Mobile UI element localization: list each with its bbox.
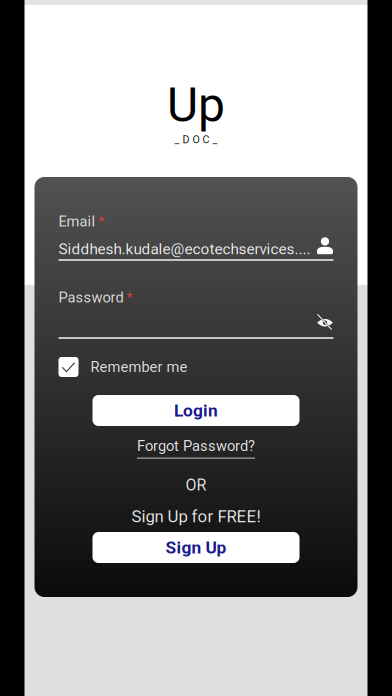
staticText: Email: [58, 213, 95, 230]
staticText: Siddhesh.kudale@ecotechservices....: [58, 240, 310, 258]
staticText: Up: [167, 77, 225, 133]
button[interactable]: Remember me: [58, 357, 333, 377]
staticText: Sign Up: [165, 537, 226, 558]
staticText: Remember me: [90, 358, 187, 376]
staticText: *: [98, 213, 104, 228]
button[interactable]: Login: [92, 395, 299, 426]
button[interactable]: Forgot Password?: [58, 439, 333, 457]
staticText: _ D O C _: [174, 133, 217, 146]
staticText: Forgot Password?: [137, 437, 255, 455]
staticText: *: [126, 289, 132, 304]
button[interactable]: Sign Up: [92, 532, 299, 563]
staticText: Login: [174, 400, 218, 421]
staticText: Sign Up for FREE!: [131, 507, 260, 526]
staticText: Password: [58, 289, 123, 306]
staticText: OR: [185, 476, 206, 494]
